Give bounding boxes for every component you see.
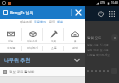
staticText: 소품: [51, 46, 57, 50]
button[interactable]: 홈: [64, 25, 85, 43]
staticText: 설정 변경 및 사용: [87, 48, 109, 52]
button[interactable]: App shortcut: [90, 69, 94, 73]
staticText: 정보 공유 활성화: [9, 69, 35, 74]
button[interactable]: 나무위 추천: [0, 53, 85, 67]
button[interactable]: App shortcut: [86, 69, 90, 73]
button[interactable]: Close tab: [72, 6, 85, 19]
staticText: 홈: [74, 39, 77, 42]
button[interactable]: 소품: [43, 44, 64, 52]
staticText: 10:48: [111, 1, 118, 5]
staticText: 주문확인: [34, 20, 46, 24]
staticText: 부품: [51, 39, 57, 42]
staticText: 안내하기: [27, 46, 39, 50]
staticText: 알림 모드: [87, 35, 102, 40]
other: Expand section: [74, 57, 80, 63]
button[interactable]: 정보 공유 활성화: [0, 67, 85, 76]
staticText: 배송조회: [20, 20, 32, 24]
staticText: 수정중: [7, 46, 16, 50]
staticText: Bengjl’s 님의: [10, 10, 34, 15]
button[interactable]: Power: [96, 9, 106, 19]
button[interactable]: 메일: [0, 25, 22, 43]
staticText: 회원: [57, 20, 63, 24]
button[interactable]: App shortcut: [106, 69, 110, 73]
button[interactable]: All apps: [107, 9, 117, 19]
button[interactable]: 검색: [64, 44, 85, 52]
button[interactable]: Options: [111, 34, 118, 41]
staticText: 검색: [72, 46, 78, 50]
button[interactable]: App shortcut: [98, 69, 102, 73]
button[interactable]: 배송조회: [22, 25, 43, 43]
button[interactable]: App shortcut: [102, 69, 106, 73]
staticText: 문의: [49, 20, 55, 24]
staticText: 메일: [8, 39, 14, 42]
staticText: 사항을 확인하세요: [87, 53, 111, 57]
button[interactable]: 부품: [43, 25, 64, 43]
staticText: 47%: [100, 1, 106, 5]
button[interactable]: 안내하기: [22, 44, 43, 52]
staticText: 배송조회: [27, 39, 38, 42]
button[interactable]: App shortcut: [94, 69, 98, 73]
staticText: 알림 사용 시 각종: [87, 43, 109, 47]
button[interactable]: 수정중: [0, 44, 22, 52]
staticText: 나무위 추천: [4, 57, 31, 64]
